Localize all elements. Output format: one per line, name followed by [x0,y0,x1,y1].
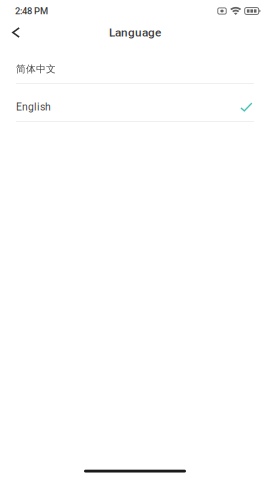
button[interactable]: Back [0,19,29,46]
staticText: English [16,101,51,113]
button[interactable]: 简体中文 [0,46,270,84]
staticText: 2:48 PM [15,5,48,16]
button[interactable]: English [0,84,270,122]
staticText: 简体中文 [16,63,56,75]
staticText: Language [109,26,161,39]
